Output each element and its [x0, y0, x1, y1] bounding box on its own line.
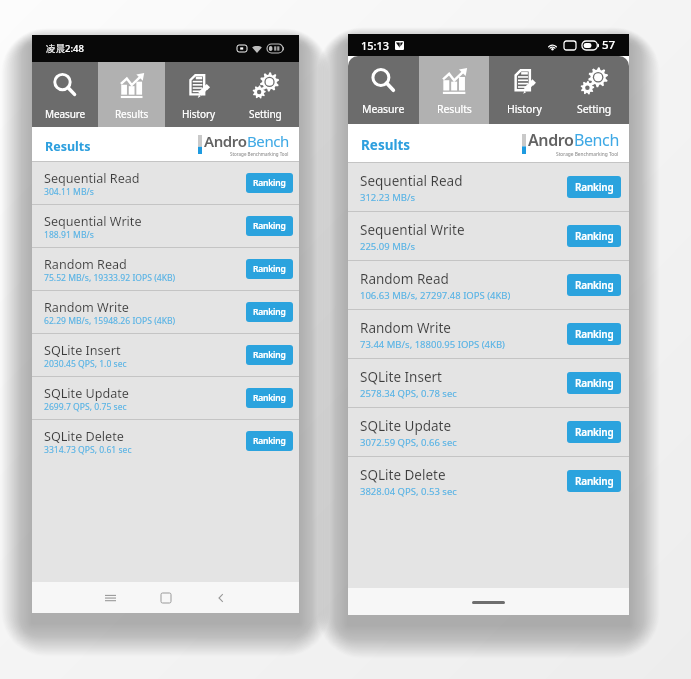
button[interactable]: Ranking — [567, 225, 621, 247]
button[interactable]: Ranking — [246, 173, 293, 193]
staticText: 312.23 MB/s — [360, 191, 416, 204]
staticText: 304.11 MB/s — [44, 186, 94, 198]
staticText: Ranking — [253, 349, 286, 361]
staticText: 188.91 MB/s — [44, 229, 94, 241]
staticText: History — [507, 102, 542, 116]
button[interactable]: Sequential Read — [348, 163, 629, 211]
button[interactable]: Setting — [232, 62, 299, 127]
staticText: Sequential Write — [44, 213, 142, 230]
staticText: Ranking — [253, 306, 286, 318]
staticText: Ranking — [253, 220, 286, 232]
button[interactable]: Back — [204, 582, 237, 613]
button[interactable]: Ranking — [567, 176, 621, 198]
button[interactable]: Recents — [94, 582, 127, 613]
button[interactable]: Sequential Write — [32, 205, 299, 247]
button[interactable]: Ranking — [246, 259, 293, 279]
staticText: 73.44 MB/s, 18800.95 IOPS (4KB) — [360, 338, 505, 351]
staticText: Ranking — [575, 376, 614, 390]
staticText: Random Read — [44, 256, 127, 273]
staticText: 62.29 MB/s, 15948.26 IOPS (4KB) — [44, 315, 176, 327]
staticText: 225.09 MB/s — [360, 240, 416, 253]
button[interactable]: Measure — [348, 56, 419, 124]
staticText: Setting — [577, 102, 612, 116]
staticText: 57 — [602, 37, 616, 53]
button[interactable]: Home gesture — [472, 601, 505, 604]
staticText: Ranking — [575, 180, 614, 194]
staticText: Sequential Write — [360, 221, 465, 239]
button[interactable]: Measure — [32, 62, 98, 127]
button[interactable]: Ranking — [246, 216, 293, 236]
staticText: 3072.59 QPS, 0.66 sec — [360, 436, 457, 449]
button[interactable]: Setting — [559, 56, 629, 124]
staticText: Bench — [247, 131, 289, 151]
staticText: 75.52 MB/s, 19333.92 IOPS (4KB) — [44, 272, 176, 284]
staticText: SQLite Update — [44, 385, 129, 402]
staticText: Ranking — [575, 474, 614, 488]
staticText: Ranking — [253, 177, 286, 189]
button[interactable]: Ranking — [567, 323, 621, 345]
button[interactable]: Results — [98, 62, 165, 127]
staticText: SQLite Delete — [44, 428, 124, 445]
staticText: 106.63 MB/s, 27297.48 IOPS (4KB) — [360, 289, 511, 302]
button[interactable]: Ranking — [246, 431, 293, 451]
staticText: History — [182, 107, 215, 121]
staticText: SQLite Update — [360, 417, 452, 435]
staticText: 15:13 — [361, 38, 390, 53]
button[interactable]: Ranking — [567, 421, 621, 443]
button[interactable]: SQLite Update — [348, 408, 629, 456]
staticText: Random Write — [44, 299, 129, 316]
staticText: Results — [115, 107, 149, 121]
staticText: Results — [45, 138, 91, 155]
staticText: Ranking — [575, 278, 614, 292]
staticText: Random Write — [360, 319, 451, 337]
staticText: Ranking — [253, 392, 286, 404]
staticText: SQLite Insert — [44, 342, 121, 359]
staticText: Sequential Read — [44, 170, 140, 187]
button[interactable]: Random Read — [32, 248, 299, 290]
button[interactable]: SQLite Update — [32, 377, 299, 419]
button[interactable]: Random Write — [32, 291, 299, 333]
button[interactable]: Ranking — [567, 274, 621, 296]
button[interactable]: Ranking — [567, 470, 621, 492]
staticText: Storage Benchmarking Tool — [556, 151, 619, 158]
button[interactable]: Random Write — [348, 310, 629, 358]
staticText: SQLite Delete — [360, 466, 446, 484]
staticText: Ranking — [575, 229, 614, 243]
staticText: Setting — [249, 107, 282, 121]
staticText: Sequential Read — [360, 172, 463, 190]
staticText: SQLite Insert — [360, 368, 442, 386]
staticText: 2699.7 QPS, 0.75 sec — [44, 401, 127, 413]
staticText: Storage Benchmarking Tool — [230, 151, 289, 157]
staticText: 凌晨2:48 — [46, 42, 84, 55]
staticText: 2030.45 QPS, 1.0 sec — [44, 358, 127, 370]
button[interactable]: SQLite Insert — [348, 359, 629, 407]
button[interactable]: Sequential Write — [348, 212, 629, 260]
staticText: 3828.04 QPS, 0.53 sec — [360, 485, 457, 498]
button[interactable]: Ranking — [246, 388, 293, 408]
staticText: Results — [437, 102, 472, 116]
button[interactable]: History — [489, 56, 559, 124]
staticText: Andro — [204, 131, 247, 151]
staticText: Random Read — [360, 270, 449, 288]
button[interactable]: Home — [149, 582, 182, 613]
button[interactable]: Ranking — [567, 372, 621, 394]
button[interactable]: SQLite Delete — [348, 457, 629, 505]
button[interactable]: Sequential Read — [32, 162, 299, 204]
button[interactable]: Results — [419, 56, 489, 124]
staticText: Measure — [45, 107, 86, 121]
staticText: Ranking — [575, 327, 614, 341]
staticText: Ranking — [575, 425, 614, 439]
staticText: 3314.73 QPS, 0.61 sec — [44, 444, 132, 456]
staticText: Bench — [574, 129, 619, 151]
button[interactable]: Ranking — [246, 302, 293, 322]
button[interactable]: Ranking — [246, 345, 293, 365]
staticText: Andro — [528, 129, 574, 151]
button[interactable]: SQLite Delete — [32, 420, 299, 462]
staticText: 2578.34 QPS, 0.78 sec — [360, 387, 457, 400]
staticText: Ranking — [253, 263, 286, 275]
staticText: Results — [361, 136, 411, 154]
button[interactable]: History — [165, 62, 232, 127]
button[interactable]: Random Read — [348, 261, 629, 309]
button[interactable]: SQLite Insert — [32, 334, 299, 376]
staticText: Measure — [362, 102, 405, 116]
